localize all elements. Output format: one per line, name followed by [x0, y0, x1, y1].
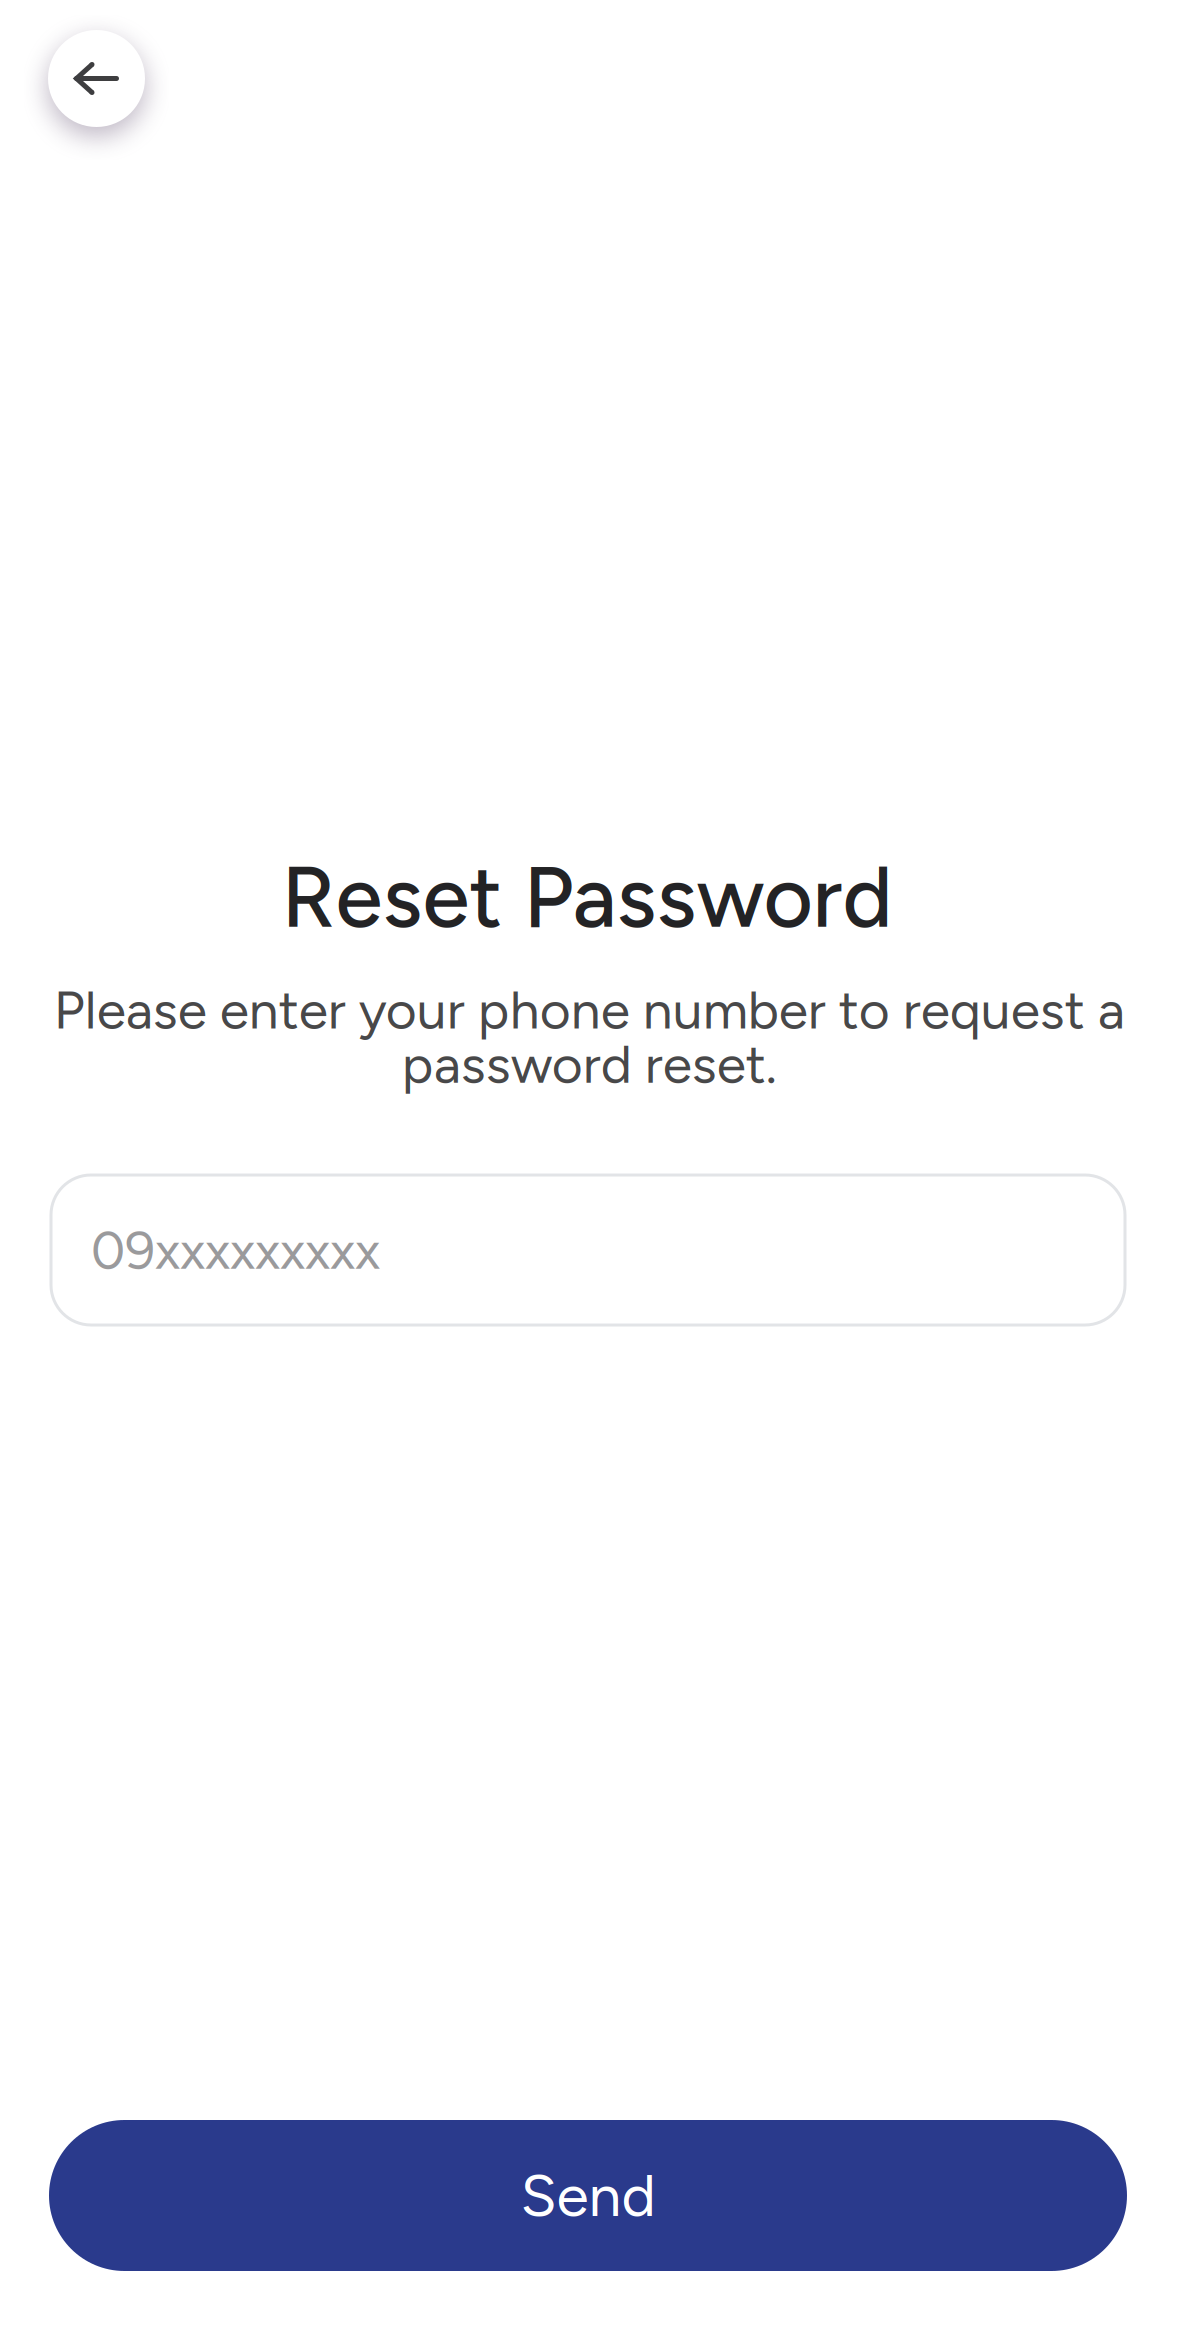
- button[interactable]: Back: [48, 30, 145, 127]
- staticText: Send: [520, 2160, 655, 2231]
- staticText: 09xxxxxxxxx: [91, 1218, 380, 1282]
- staticText: Please enter your phone number to reques…: [53, 983, 1124, 1091]
- staticText: Reset Password: [281, 846, 892, 948]
- button[interactable]: Send: [49, 2120, 1127, 2271]
